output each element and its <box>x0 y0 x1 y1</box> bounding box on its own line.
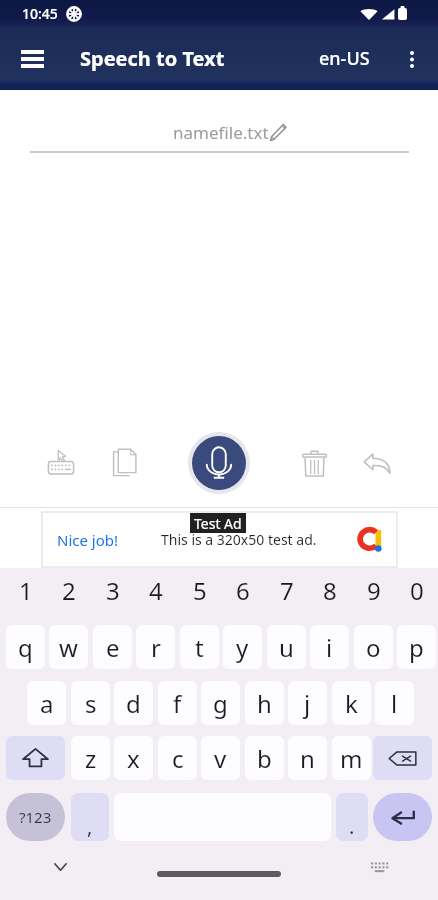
staticText: . <box>349 813 355 840</box>
button[interactable]: Shift <box>6 736 65 780</box>
staticText: 9 <box>367 574 381 607</box>
button[interactable]: y <box>223 625 262 669</box>
button[interactable]: 0 <box>397 571 436 609</box>
button[interactable]: f <box>158 681 197 725</box>
button[interactable]: s <box>71 681 110 725</box>
staticText: w <box>59 631 78 664</box>
staticText: h <box>257 687 272 720</box>
button[interactable]: v <box>201 736 240 780</box>
staticText: l <box>391 687 398 720</box>
staticText: namefile.txt <box>173 121 269 144</box>
button[interactable]: 8 <box>310 571 349 609</box>
button[interactable]: Hide keyboard <box>42 849 78 885</box>
button[interactable]: Symbols <box>6 793 65 841</box>
button[interactable]: Keyboard <box>37 439 85 487</box>
button[interactable]: k <box>332 681 371 725</box>
staticText: u <box>279 631 294 664</box>
staticText: p <box>409 631 424 664</box>
button[interactable]: e <box>93 625 132 669</box>
staticText: e <box>106 631 120 664</box>
staticText: 4 <box>149 574 163 607</box>
staticText: Speech to Text <box>80 45 225 72</box>
button[interactable]: 1 <box>6 571 45 609</box>
button[interactable]: Nice job! <box>42 512 397 567</box>
button[interactable]: n <box>288 736 327 780</box>
button[interactable]: q <box>6 625 45 669</box>
staticText: x <box>127 742 140 775</box>
staticText: 0 <box>410 574 424 607</box>
button[interactable]: namefile.txt <box>52 121 408 144</box>
button[interactable]: 6 <box>223 571 262 609</box>
staticText: n <box>300 742 315 775</box>
button[interactable]: i <box>310 625 349 669</box>
button[interactable]: Undo <box>353 439 401 487</box>
button[interactable]: o <box>354 625 393 669</box>
staticText: 10:45 <box>22 4 58 23</box>
button[interactable]: t <box>180 625 219 669</box>
staticText: 8 <box>323 574 337 607</box>
staticText: f <box>173 687 182 720</box>
staticText: 2 <box>62 574 76 607</box>
button[interactable]: en-US <box>313 36 376 81</box>
staticText: k <box>345 687 358 720</box>
staticText: t <box>195 631 204 664</box>
button[interactable]: p <box>397 625 436 669</box>
staticText: r <box>151 631 161 664</box>
button[interactable]: c <box>158 736 197 780</box>
staticText: 7 <box>280 574 294 607</box>
button[interactable]: , <box>71 793 109 841</box>
staticText: d <box>126 687 141 720</box>
staticText: v <box>214 742 227 775</box>
button[interactable]: Backspace <box>373 736 432 780</box>
button[interactable]: 2 <box>49 571 88 609</box>
button[interactable]: Enter <box>373 793 432 841</box>
staticText: z <box>85 742 97 775</box>
button[interactable]: g <box>201 681 240 725</box>
button[interactable]: Switch keyboard <box>361 849 397 885</box>
button[interactable]: Copy <box>101 439 149 487</box>
staticText: c <box>172 742 184 775</box>
staticText: This is a 320x50 test ad. <box>161 530 317 549</box>
staticText: Nice job! <box>57 530 119 550</box>
button[interactable]: 3 <box>93 571 132 609</box>
staticText: 1 <box>19 574 33 607</box>
staticText: o <box>366 631 381 664</box>
button[interactable]: h <box>245 681 284 725</box>
button[interactable]: z <box>71 736 110 780</box>
button[interactable]: 9 <box>354 571 393 609</box>
button[interactable]: Delete <box>290 439 338 487</box>
button[interactable]: l <box>375 681 414 725</box>
staticText: y <box>236 631 249 664</box>
staticText: 5 <box>193 574 207 607</box>
button[interactable]: d <box>114 681 153 725</box>
button[interactable]: w <box>49 625 88 669</box>
staticText: m <box>340 742 363 775</box>
staticText: 6 <box>236 574 250 607</box>
staticText: q <box>18 631 33 664</box>
button[interactable]: Record <box>192 436 246 490</box>
staticText: i <box>326 631 333 664</box>
staticText: en-US <box>319 46 370 71</box>
button[interactable]: 5 <box>180 571 219 609</box>
button[interactable]: j <box>288 681 327 725</box>
staticText: b <box>257 742 272 775</box>
button[interactable]: r <box>136 625 175 669</box>
staticText: Test Ad <box>194 514 242 533</box>
button[interactable]: 7 <box>267 571 306 609</box>
staticText: a <box>40 687 54 720</box>
button[interactable]: More options <box>392 39 432 79</box>
staticText: 3 <box>106 574 120 607</box>
button[interactable]: m <box>332 736 371 780</box>
staticText: j <box>304 687 311 720</box>
button[interactable]: u <box>267 625 306 669</box>
button[interactable]: Menu <box>10 37 54 81</box>
button[interactable]: . <box>336 793 368 841</box>
staticText: s <box>85 687 97 720</box>
staticText: ?123 <box>19 807 52 827</box>
staticText: g <box>213 687 228 720</box>
button[interactable]: x <box>114 736 153 780</box>
button[interactable]: b <box>245 736 284 780</box>
button[interactable]: 4 <box>136 571 175 609</box>
button[interactable]: a <box>27 681 66 725</box>
